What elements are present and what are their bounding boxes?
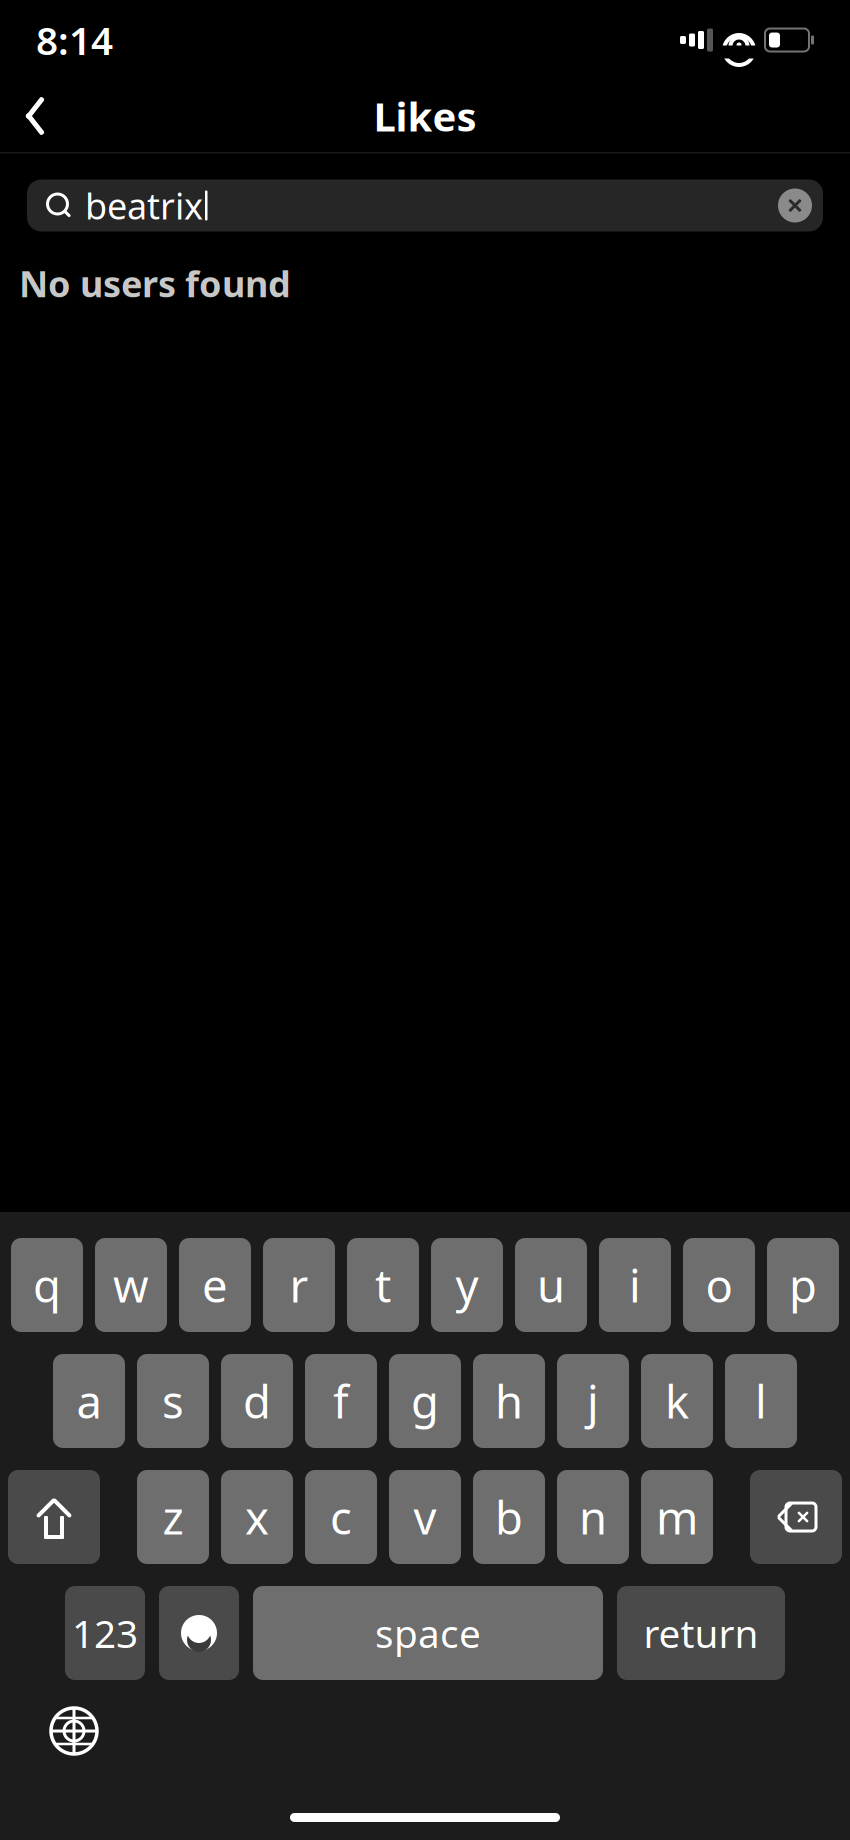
staticText: space [375, 1607, 481, 1659]
button[interactable]: y [431, 1238, 503, 1332]
staticText: g [411, 1371, 439, 1431]
button[interactable]: t [347, 1238, 419, 1332]
button[interactable]: u [515, 1238, 587, 1332]
button[interactable]: z [137, 1470, 209, 1564]
button[interactable]: r [263, 1238, 335, 1332]
button[interactable]: space [253, 1586, 603, 1680]
button[interactable]: s [137, 1354, 209, 1448]
staticText: e [202, 1255, 228, 1315]
staticText: beatrix [85, 182, 203, 229]
button[interactable]: 123 [65, 1586, 145, 1680]
button[interactable]: n [557, 1470, 629, 1564]
staticText: return [643, 1607, 758, 1659]
staticText: l [755, 1371, 767, 1431]
button[interactable]: Emoji [159, 1586, 239, 1680]
button[interactable]: m [641, 1470, 713, 1564]
staticText: r [289, 1255, 308, 1315]
button[interactable]: h [473, 1354, 545, 1448]
button[interactable]: q [11, 1238, 83, 1332]
staticText: m [656, 1487, 698, 1547]
button[interactable]: return [617, 1586, 785, 1680]
staticText: p [789, 1255, 817, 1315]
button[interactable]: Clear text [772, 182, 818, 228]
button[interactable]: Back [0, 80, 70, 152]
staticText: j [587, 1371, 599, 1431]
staticText: y [455, 1255, 478, 1315]
button[interactable]: k [641, 1354, 713, 1448]
staticText: u [537, 1255, 565, 1315]
button[interactable]: l [725, 1354, 797, 1448]
button[interactable]: p [767, 1238, 839, 1332]
button[interactable]: w [95, 1238, 167, 1332]
staticText: a [76, 1371, 101, 1431]
button[interactable]: f [305, 1354, 377, 1448]
staticText: o [705, 1255, 732, 1315]
button[interactable]: Delete [750, 1470, 842, 1564]
staticText: d [243, 1371, 271, 1431]
button[interactable]: i [599, 1238, 671, 1332]
staticText: q [33, 1255, 61, 1315]
staticText: n [579, 1487, 607, 1547]
button[interactable]: Next keyboard [28, 1692, 120, 1770]
staticText: c [330, 1487, 352, 1547]
staticText: k [665, 1371, 689, 1431]
staticText: t [375, 1255, 391, 1315]
staticText: v [413, 1487, 436, 1547]
button[interactable]: j [557, 1354, 629, 1448]
staticText: w [113, 1255, 149, 1315]
staticText: f [333, 1371, 349, 1431]
staticText: Likes [373, 89, 476, 142]
button[interactable]: v [389, 1470, 461, 1564]
staticText: 123 [72, 1607, 138, 1659]
button[interactable]: c [305, 1470, 377, 1564]
staticText: x [245, 1487, 269, 1547]
button[interactable]: a [53, 1354, 125, 1448]
button[interactable]: b [473, 1470, 545, 1564]
staticText: z [162, 1487, 183, 1547]
button[interactable]: Shift [8, 1470, 100, 1564]
staticText: h [495, 1371, 523, 1431]
button[interactable]: o [683, 1238, 755, 1332]
staticText: i [629, 1255, 641, 1315]
button[interactable]: x [221, 1470, 293, 1564]
button[interactable]: g [389, 1354, 461, 1448]
staticText: s [162, 1371, 184, 1431]
staticText: b [495, 1487, 523, 1547]
staticText: No users found [19, 259, 291, 307]
button[interactable]: d [221, 1354, 293, 1448]
button[interactable]: e [179, 1238, 251, 1332]
staticText: 8:14 [36, 14, 113, 66]
